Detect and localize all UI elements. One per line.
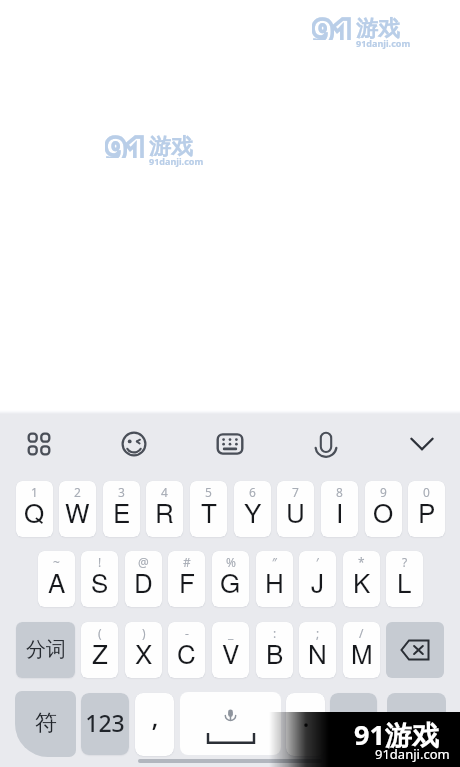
staticText: * [358, 554, 365, 570]
staticText: 123 [85, 707, 125, 738]
button[interactable]: # [168, 551, 205, 607]
staticText: 7 [292, 484, 299, 500]
button[interactable]: Keyboard layout [207, 422, 253, 466]
button[interactable]: 9 [365, 481, 402, 537]
staticText: # [183, 554, 191, 570]
staticText: 91danji.com [149, 155, 204, 167]
staticText: ″ [272, 554, 277, 570]
button[interactable]: Symbols panel [16, 422, 62, 466]
staticText: 1 [332, 6, 354, 40]
staticText: 符 [35, 709, 57, 737]
button[interactable]: Voice input [303, 422, 349, 466]
button[interactable]: / [343, 622, 380, 678]
staticText: . [302, 699, 310, 734]
staticText: D [134, 563, 153, 600]
button[interactable]: ~ [38, 551, 75, 607]
staticText: I [336, 493, 344, 530]
button[interactable]: 8 [321, 481, 358, 537]
staticText: X [135, 634, 153, 671]
staticText: 9 [380, 484, 387, 500]
staticText: 91danji.com [356, 37, 411, 49]
button[interactable]: 6 [234, 481, 271, 537]
staticText: 4 [161, 484, 168, 500]
button[interactable]: % [212, 551, 249, 607]
button[interactable]: 2 [59, 481, 96, 537]
staticText: Q [24, 493, 45, 530]
staticText: 91游戏 [354, 716, 439, 753]
staticText: ~ [53, 554, 60, 570]
staticText: S [91, 563, 109, 600]
staticText: O [373, 493, 394, 530]
button[interactable]: ! [81, 551, 118, 607]
staticText: - [185, 625, 189, 641]
staticText: ) [142, 625, 146, 641]
button[interactable]: Emoji [111, 422, 157, 466]
button[interactable]: 中 [330, 693, 377, 755]
staticText: J [311, 563, 325, 600]
staticText: 91danji.com [375, 745, 450, 763]
staticText: N [308, 634, 327, 671]
staticText: ; [316, 625, 320, 641]
button[interactable]: 3 [103, 481, 140, 537]
staticText: , [151, 699, 159, 734]
button[interactable]: ″ [256, 551, 293, 607]
staticText: 9 [312, 6, 334, 40]
staticText: _ [228, 625, 234, 641]
staticText: H [265, 563, 284, 600]
button[interactable]: 1 [16, 481, 53, 537]
button[interactable]: ′ [299, 551, 336, 607]
button[interactable]: Space [180, 692, 281, 755]
staticText: C [177, 634, 196, 671]
staticText: B [266, 634, 284, 671]
staticText: @ [138, 554, 149, 570]
staticText: 1 [31, 484, 38, 500]
staticText: M [351, 634, 373, 671]
staticText: U [286, 493, 305, 530]
staticText: 9 [105, 124, 127, 158]
button[interactable]: - [168, 622, 205, 678]
button[interactable]: Backspace [386, 622, 444, 678]
staticText: 5 [205, 484, 212, 500]
button[interactable]: ; [299, 622, 336, 678]
button[interactable]: , [135, 693, 174, 756]
button[interactable]: _ [212, 622, 249, 678]
staticText: E [113, 493, 131, 530]
button[interactable]: 符 [15, 691, 76, 757]
staticText: 游戏 [356, 15, 400, 43]
button[interactable]: * [343, 551, 380, 607]
staticText: 1 [125, 124, 147, 158]
staticText: 2 [74, 484, 81, 500]
staticText: ( [98, 625, 102, 641]
button[interactable]: ) [125, 622, 162, 678]
staticText: Y [244, 493, 262, 530]
staticText: ? [402, 554, 408, 570]
staticText: A [48, 563, 66, 600]
button[interactable]: @ [125, 551, 162, 607]
button[interactable]: Hide keyboard [399, 422, 445, 466]
staticText: ! [98, 554, 102, 570]
staticText: 3 [118, 484, 125, 500]
button[interactable]: 4 [146, 481, 183, 537]
staticText: K [353, 563, 371, 600]
button[interactable]: : [256, 622, 293, 678]
button[interactable]: 123 [81, 693, 129, 755]
staticText: 8 [336, 484, 343, 500]
button[interactable]: Enter [387, 693, 446, 755]
button[interactable]: ( [81, 622, 118, 678]
staticText: 分词 [26, 637, 66, 662]
button[interactable]: 0 [408, 481, 445, 537]
staticText: W [65, 493, 90, 530]
staticText: L [397, 563, 412, 600]
button[interactable]: . [286, 693, 325, 756]
staticText: / [359, 625, 364, 641]
staticText: % [226, 554, 236, 570]
staticText: 中 [343, 712, 365, 740]
button[interactable]: ? [386, 551, 423, 607]
staticText: V [222, 634, 240, 671]
button[interactable]: 5 [190, 481, 227, 537]
button[interactable]: 分词 [16, 622, 75, 678]
staticText: ′ [316, 554, 319, 570]
button[interactable]: 7 [277, 481, 314, 537]
staticText: 6 [249, 484, 256, 500]
staticText: 0 [423, 484, 430, 500]
